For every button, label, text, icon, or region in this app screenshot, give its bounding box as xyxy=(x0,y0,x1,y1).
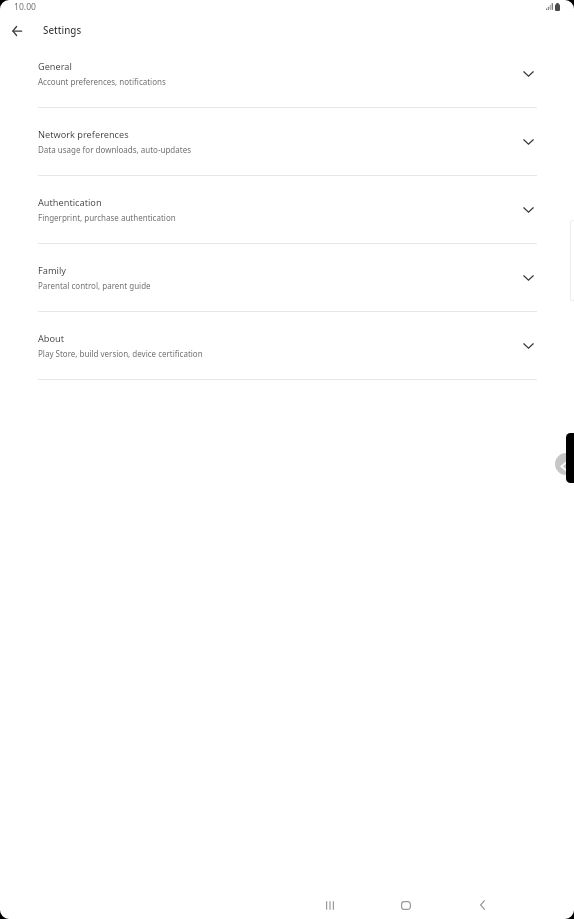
button[interactable]: Network preferences xyxy=(0,108,574,176)
staticText: Data usage for downloads, auto-updates xyxy=(38,144,191,155)
staticText: Account preferences, notifications xyxy=(38,76,166,87)
staticText: General xyxy=(38,60,72,73)
button[interactable]: Back xyxy=(460,883,504,919)
staticText: Parental control, parent guide xyxy=(38,280,151,291)
button[interactable]: Recent apps xyxy=(308,883,352,919)
staticText: Settings xyxy=(43,24,82,37)
other: Edge panel handle xyxy=(555,453,567,475)
staticText: Play Store, build version, device certif… xyxy=(38,348,203,359)
staticText: Network preferences xyxy=(38,128,129,141)
staticText: About xyxy=(38,332,65,345)
staticText: 10.00 xyxy=(14,1,36,13)
button[interactable]: Family xyxy=(0,244,574,312)
button[interactable]: Navigate up xyxy=(5,19,28,42)
button[interactable]: General xyxy=(0,40,574,108)
button[interactable]: Home xyxy=(384,883,428,919)
button[interactable]: About xyxy=(0,312,574,380)
staticText: Fingerprint, purchase authentication xyxy=(38,212,176,223)
staticText: Family xyxy=(38,264,66,277)
staticText: Authentication xyxy=(38,196,102,209)
button[interactable]: Authentication xyxy=(0,176,574,244)
